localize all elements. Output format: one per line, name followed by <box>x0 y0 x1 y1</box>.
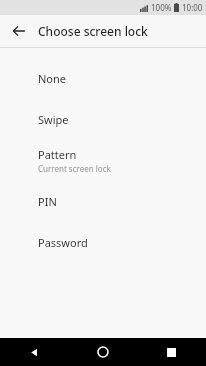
staticText: Pattern <box>38 147 77 162</box>
button[interactable]: PIN <box>0 181 206 222</box>
button[interactable]: Recent apps <box>137 338 206 366</box>
button[interactable]: Swipe <box>0 99 206 140</box>
staticText: 100% <box>151 2 172 13</box>
staticText: Password <box>38 235 88 250</box>
staticText: PIN <box>38 194 57 209</box>
staticText: Current screen lock <box>38 163 111 174</box>
button[interactable]: Navigate up <box>7 19 31 43</box>
button[interactable]: Home <box>68 338 137 366</box>
staticText: Swipe <box>38 112 69 127</box>
button[interactable]: Back <box>0 338 68 366</box>
button[interactable]: Pattern <box>0 140 206 181</box>
staticText: None <box>38 71 67 86</box>
button[interactable]: Password <box>0 222 206 263</box>
staticText: 10:00 <box>182 2 203 13</box>
staticText: Choose screen lock <box>38 23 148 39</box>
button[interactable]: None <box>0 58 206 99</box>
